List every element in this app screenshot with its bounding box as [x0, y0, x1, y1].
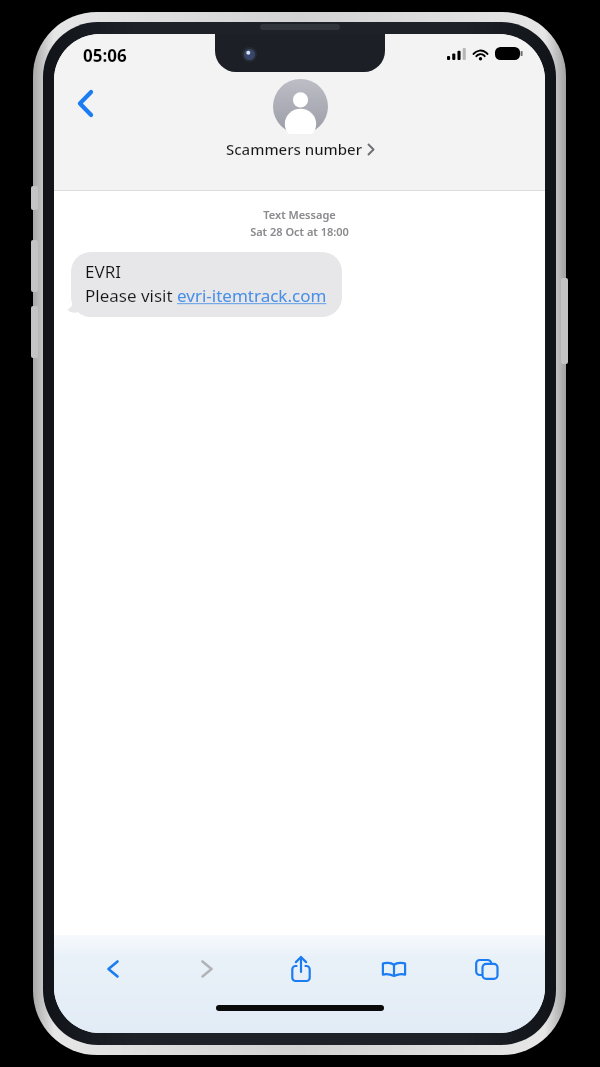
button[interactable]: Share: [254, 945, 347, 993]
button[interactable]: Back: [66, 945, 160, 993]
staticText: EVRI: [85, 260, 121, 283]
button[interactable]: Scammers number: [226, 79, 374, 159]
staticText: Text Message: [54, 207, 545, 222]
staticText: 05:06: [83, 44, 127, 67]
button[interactable]: Back: [62, 80, 108, 126]
staticText: Sat 28 Oct at 18:00: [54, 224, 545, 239]
button[interactable]: Tabs: [440, 945, 533, 993]
staticText: Please visit evri-itemtrack.com: [85, 284, 327, 307]
button[interactable]: Bookmarks: [347, 945, 440, 993]
button[interactable]: Forward: [160, 945, 254, 993]
button[interactable]: EVRI: [71, 252, 342, 317]
staticText: Scammers number: [226, 139, 363, 159]
